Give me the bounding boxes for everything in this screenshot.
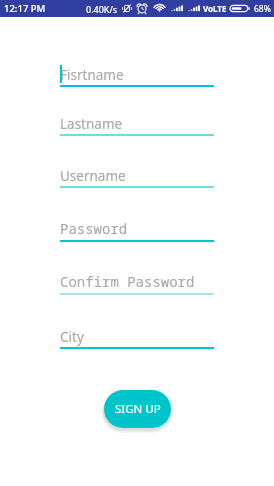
staticText: 12:17 PM	[4, 2, 46, 15]
staticText: Confirm Password	[60, 272, 195, 291]
button[interactable]: Fisrtname	[60, 56, 214, 86]
other: Signal	[171, 3, 183, 14]
button[interactable]: Username	[60, 157, 214, 187]
staticText: Password	[60, 219, 128, 238]
other: Alarm	[136, 3, 148, 14]
staticText: Lastname	[60, 115, 123, 133]
button[interactable]: Lastname	[60, 105, 214, 135]
staticText: VoLTE	[203, 3, 227, 14]
staticText: Username	[60, 167, 126, 185]
button[interactable]: Password	[60, 211, 214, 241]
other: Vibration off	[121, 3, 133, 14]
staticText: SIGN UP	[115, 401, 161, 417]
staticText: City	[60, 328, 84, 346]
button[interactable]: City	[60, 318, 214, 348]
button[interactable]: Confirm Password	[60, 264, 214, 294]
staticText: Fisrtname	[60, 66, 124, 84]
button[interactable]: SIGN UP	[104, 390, 171, 428]
staticText: 0.40K/s	[86, 3, 118, 15]
staticText: 68%	[254, 3, 271, 15]
other: Signal	[188, 3, 200, 14]
